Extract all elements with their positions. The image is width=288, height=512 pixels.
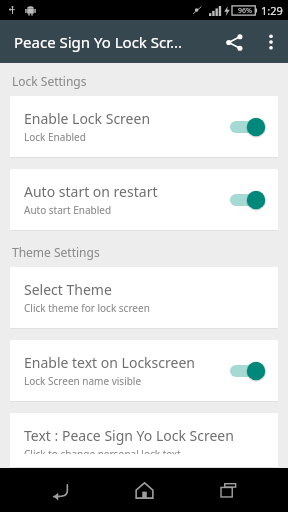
button[interactable]: Share [214,22,254,62]
button[interactable]: Toggle [230,360,266,382]
staticText: Lock Enabled [24,130,86,144]
staticText: Enable text on Lockscreen [24,353,195,372]
staticText: Lock Settings [12,73,87,89]
staticText: Click to change personal lock text [24,447,181,454]
button[interactable]: More options [254,25,288,59]
button[interactable]: Enable Lock Screen [10,96,278,157]
button[interactable]: Home [120,468,168,512]
staticText: Auto start Enabled [24,203,112,217]
staticText: Peace Sign Yo Lock Scr... [14,32,199,52]
staticText: Click theme for lock screen [24,301,150,315]
staticText: Theme Settings [12,244,100,260]
staticText: Lock Screen name visible [24,374,142,388]
button[interactable]: Toggle [230,189,266,211]
staticText: 96% [238,6,252,16]
button[interactable]: Auto start on restart [10,169,278,230]
button[interactable]: Enable text on Lockscreen [10,340,278,401]
staticText: 1:29 [261,3,283,18]
button[interactable]: Recent apps [204,468,252,512]
staticText: Select Theme [24,280,112,299]
button[interactable]: Text : Peace Sign Yo Lock Screen [10,413,278,467]
staticText: Text : Peace Sign Yo Lock Screen [24,426,234,445]
button[interactable]: Select Theme [10,267,278,328]
staticText: Enable Lock Screen [24,109,151,128]
staticText: Auto start on restart [24,182,158,201]
button[interactable]: Toggle [230,116,266,138]
button[interactable]: Back [36,468,84,512]
